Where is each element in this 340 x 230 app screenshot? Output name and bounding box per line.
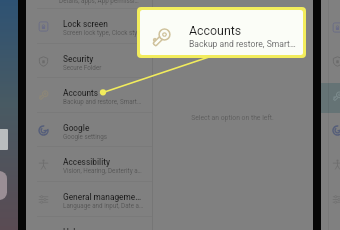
staticText: Backup and restore, Smart… xyxy=(189,39,296,49)
button[interactable]: Google xyxy=(25,113,152,147)
staticText: Google xyxy=(63,123,90,133)
staticText: Secure Folder xyxy=(63,64,102,71)
staticText: Help xyxy=(63,227,81,230)
button[interactable]: Accounts xyxy=(140,10,303,55)
staticText: Backup and restore, Smart… xyxy=(63,98,142,105)
staticText: Google settings xyxy=(63,133,107,140)
staticText: Select an option on the left. xyxy=(153,114,312,122)
staticText: Accounts xyxy=(63,88,99,98)
button[interactable]: Security xyxy=(25,44,152,78)
staticText: Details, apps, App permissi… xyxy=(59,0,139,4)
staticText: Accounts xyxy=(189,23,242,38)
staticText: Screen lock type, Clock sty… xyxy=(63,29,142,36)
button[interactable]: Accessibility xyxy=(25,147,152,181)
button[interactable]: General manageme… xyxy=(25,182,152,216)
staticText: Security xyxy=(63,54,94,64)
staticText: Language and input, Date a… xyxy=(63,202,144,209)
button[interactable]: Accounts xyxy=(25,78,152,112)
staticText: Lock screen xyxy=(63,19,108,29)
staticText: Accessibility xyxy=(63,157,111,167)
button[interactable]: Lock screen xyxy=(25,9,152,43)
staticText: Vision, Hearing, Dexterity a… xyxy=(63,167,142,174)
staticText: General manageme… xyxy=(63,192,142,202)
